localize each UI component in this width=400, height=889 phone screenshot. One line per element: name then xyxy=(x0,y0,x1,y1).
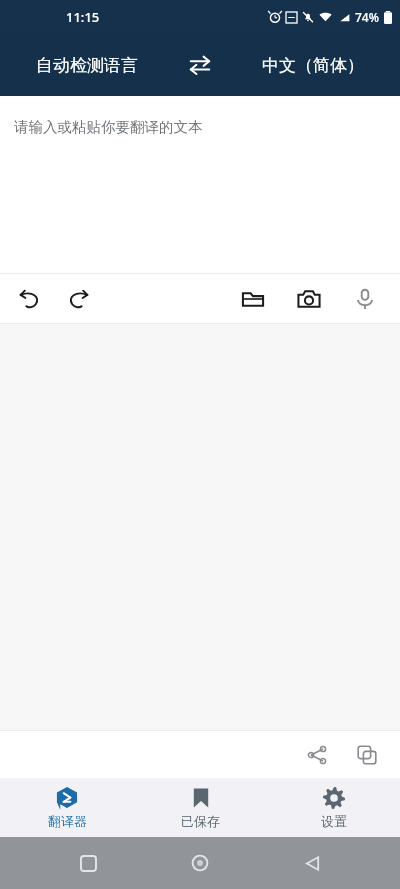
button[interactable]: Home xyxy=(176,839,224,887)
button[interactable]: Voice input xyxy=(344,278,386,320)
staticText: 已保存 xyxy=(181,813,220,829)
staticText: 中文（简体） xyxy=(262,55,364,76)
staticText: 74% xyxy=(355,9,379,25)
staticText: 自动检测语言 xyxy=(36,55,138,76)
button[interactable]: Copy xyxy=(346,734,388,776)
staticText: 设置 xyxy=(321,813,347,829)
button[interactable]: Open file xyxy=(232,278,274,320)
button[interactable]: Swap languages xyxy=(174,39,226,91)
button[interactable]: Camera xyxy=(288,278,330,320)
button[interactable]: 设置 xyxy=(267,778,400,837)
button[interactable]: 已保存 xyxy=(134,778,267,837)
button[interactable]: 中文（简体） xyxy=(226,34,400,96)
staticText: 请输入或粘贴你要翻译的文本 xyxy=(14,118,203,136)
staticText: 翻译器 xyxy=(48,813,87,829)
button[interactable]: 自动检测语言 xyxy=(0,34,174,96)
button[interactable]: Recents xyxy=(64,839,112,887)
button[interactable]: Back xyxy=(288,839,336,887)
button[interactable]: Redo xyxy=(58,278,100,320)
staticText: 11:15 xyxy=(66,8,100,26)
button[interactable]: Share xyxy=(296,734,338,776)
button[interactable]: 翻译器 xyxy=(0,778,134,837)
button[interactable]: Undo xyxy=(8,278,50,320)
button[interactable]: 请输入或粘贴你要翻译的文本 xyxy=(0,96,400,273)
